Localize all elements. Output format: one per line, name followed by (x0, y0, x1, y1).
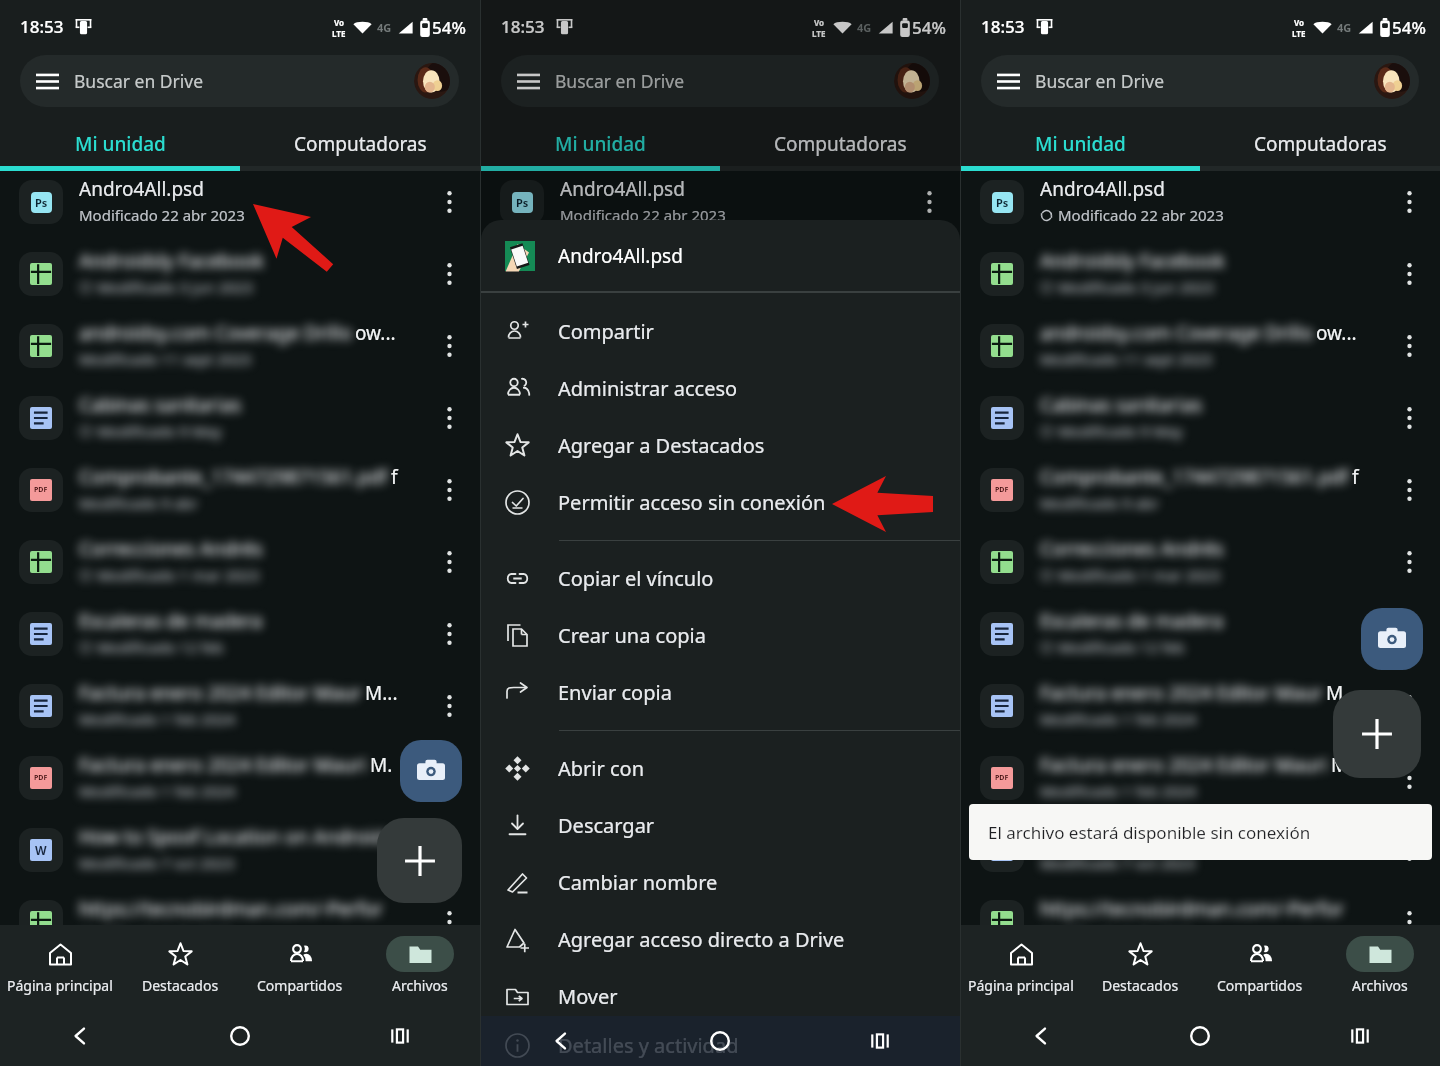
button[interactable]: More options (1388, 886, 1430, 958)
button[interactable]: https://tecnobirdman.com/-Perfor (481, 886, 960, 958)
button[interactable]: More options (1388, 526, 1430, 598)
button[interactable]: More options (1388, 598, 1430, 670)
button[interactable]: Account (1374, 63, 1410, 99)
button[interactable]: Factura enero 2024 Editor Maur (481, 670, 960, 742)
button[interactable]: Correcciones Andrés (0, 526, 480, 598)
button[interactable]: More options (1388, 166, 1430, 238)
button[interactable]: Ps (961, 166, 1440, 238)
button[interactable]: More options (428, 310, 470, 382)
button[interactable]: More options (428, 598, 470, 670)
button[interactable]: PDF (961, 742, 1440, 814)
button[interactable]: androidsy.com Coverage Drillo (0, 310, 480, 382)
button[interactable]: El archivo estará disponible sin conexió… (969, 804, 1432, 860)
button[interactable]: More options (1388, 814, 1430, 886)
button[interactable]: More options (1388, 382, 1430, 454)
button[interactable]: https://tecnobirdman.com/-Perfor (0, 886, 480, 958)
button[interactable]: Mover (481, 968, 960, 1025)
button[interactable]: Menu (20, 55, 459, 107)
button[interactable]: Scan document (1361, 608, 1423, 670)
button[interactable]: More options (428, 382, 470, 454)
button[interactable]: Ps (0, 166, 480, 238)
button[interactable]: Menu (981, 55, 1419, 107)
button[interactable]: Mi unidad (961, 107, 1200, 166)
button[interactable]: androidsy.com Coverage Drillo (481, 310, 960, 382)
button[interactable]: https://tecnobirdman.com/-Perfor (961, 886, 1440, 958)
button[interactable]: Enviar copia (481, 664, 960, 721)
button[interactable]: Página principal (0, 925, 120, 1005)
button[interactable]: Agregar a Destacados (481, 417, 960, 474)
button[interactable]: Androidsly Facebook (961, 238, 1440, 310)
button[interactable]: More options (1388, 238, 1430, 310)
button[interactable]: More options (428, 886, 470, 958)
button[interactable]: Compartir (481, 303, 960, 360)
button[interactable]: Abrir con (481, 740, 960, 797)
button[interactable]: Cabinas sanitarias (0, 382, 480, 454)
button[interactable]: W (961, 814, 1440, 886)
button[interactable]: Escaleras de madera (0, 598, 480, 670)
button[interactable]: Detalles y actividad (481, 1025, 960, 1066)
button[interactable]: Escaleras de madera (961, 598, 1440, 670)
button[interactable]: More options (428, 166, 470, 238)
button[interactable]: Ps (481, 166, 960, 238)
button[interactable]: Factura enero 2024 Editor Maur (961, 670, 1440, 742)
button[interactable]: Computadoras (720, 107, 960, 166)
button[interactable]: Cabinas sanitarias (961, 382, 1440, 454)
button[interactable]: Androidsly Facebook (481, 238, 960, 310)
button[interactable]: Mi unidad (0, 107, 240, 166)
button[interactable]: Create new (377, 818, 462, 903)
button[interactable]: Cambiar nombre (481, 854, 960, 911)
button[interactable]: Archivos (360, 925, 480, 1005)
button[interactable]: Scan document (400, 740, 462, 802)
button[interactable]: More options (428, 814, 470, 886)
button[interactable]: More options (908, 454, 950, 526)
button[interactable]: Copiar el vínculo (481, 550, 960, 607)
button[interactable]: Mi unidad (481, 107, 720, 166)
button[interactable]: W (481, 814, 960, 886)
button[interactable]: Account (414, 63, 450, 99)
button[interactable]: Create new (1333, 690, 1421, 778)
button[interactable]: Correcciones Andrés (481, 526, 960, 598)
button[interactable]: More options (428, 454, 470, 526)
button[interactable]: Destacados (120, 925, 240, 1005)
button[interactable]: W (0, 814, 480, 886)
button[interactable]: Computadoras (240, 107, 480, 166)
button[interactable]: Androidsly Facebook (0, 238, 480, 310)
button[interactable]: More options (428, 238, 470, 310)
button[interactable]: Account (894, 63, 930, 99)
button[interactable]: More options (908, 166, 950, 238)
button[interactable]: More options (908, 526, 950, 598)
button[interactable]: PDF (0, 742, 480, 814)
button[interactable]: PDF (961, 454, 1440, 526)
button[interactable]: Computadoras (1200, 107, 1440, 166)
button[interactable]: PDF (481, 454, 960, 526)
button[interactable]: Agregar acceso directo a Drive (481, 911, 960, 968)
button[interactable]: More options (908, 670, 950, 742)
button[interactable]: Permitir acceso sin conexión (481, 474, 960, 531)
button[interactable]: Cabinas sanitarias (481, 382, 960, 454)
button[interactable]: Destacados (1080, 925, 1200, 1005)
button[interactable]: Descargar (481, 797, 960, 854)
button[interactable]: More options (908, 238, 950, 310)
button[interactable]: Página principal (961, 925, 1080, 1005)
button[interactable]: Archivos (1320, 925, 1440, 1005)
button[interactable]: More options (428, 670, 470, 742)
button[interactable]: More options (1388, 310, 1430, 382)
button[interactable]: Factura enero 2024 Editor Maur (0, 670, 480, 742)
button[interactable]: Compartidos (1200, 925, 1320, 1005)
button[interactable]: More options (1388, 670, 1430, 742)
button[interactable]: Menu (501, 55, 939, 107)
button[interactable]: More options (428, 742, 470, 814)
button[interactable]: More options (1388, 742, 1430, 814)
button[interactable]: PDF (481, 742, 960, 814)
button[interactable]: More options (1388, 454, 1430, 526)
button[interactable]: PDF (0, 454, 480, 526)
button[interactable]: Crear una copia (481, 607, 960, 664)
button[interactable]: More options (428, 526, 470, 598)
button[interactable]: Escaleras de madera (481, 598, 960, 670)
